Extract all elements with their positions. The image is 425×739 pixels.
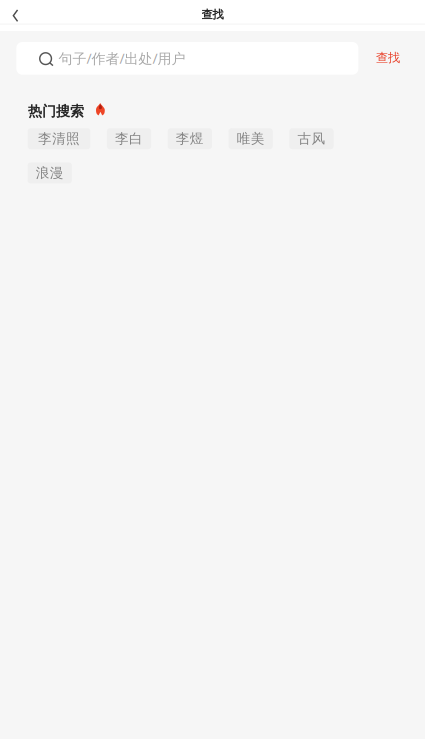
staticText: 热门搜索 [28, 102, 84, 120]
staticText: 句子/作者/出处/用户 [58, 49, 185, 68]
staticText: 李煜 [176, 130, 204, 147]
staticText: 查找 [201, 7, 223, 21]
button[interactable]: 句子/作者/出处/用户 [16, 42, 358, 75]
staticText: 古风 [297, 130, 325, 147]
button[interactable]: 李清照 [28, 128, 90, 149]
staticText: 李清照 [38, 130, 80, 147]
button[interactable]: 查找 [368, 42, 408, 75]
staticText: 浪漫 [36, 164, 64, 181]
button[interactable]: 浪漫 [28, 162, 72, 183]
staticText: 唯美 [237, 130, 265, 147]
button[interactable]: 唯美 [228, 128, 273, 149]
button[interactable]: Back [0, 0, 35, 31]
button[interactable]: 古风 [289, 128, 334, 149]
button[interactable]: 李煜 [168, 128, 212, 149]
staticText: 查找 [376, 50, 400, 65]
button[interactable]: 李白 [107, 128, 151, 149]
staticText: 李白 [115, 130, 143, 147]
